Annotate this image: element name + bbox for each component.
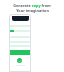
- staticText: Generate copy from: [13, 3, 51, 8]
- button[interactable]: Done: [17, 58, 22, 63]
- button[interactable]: Generate: [9, 50, 31, 55]
- staticText: Your imagination: [16, 8, 49, 13]
